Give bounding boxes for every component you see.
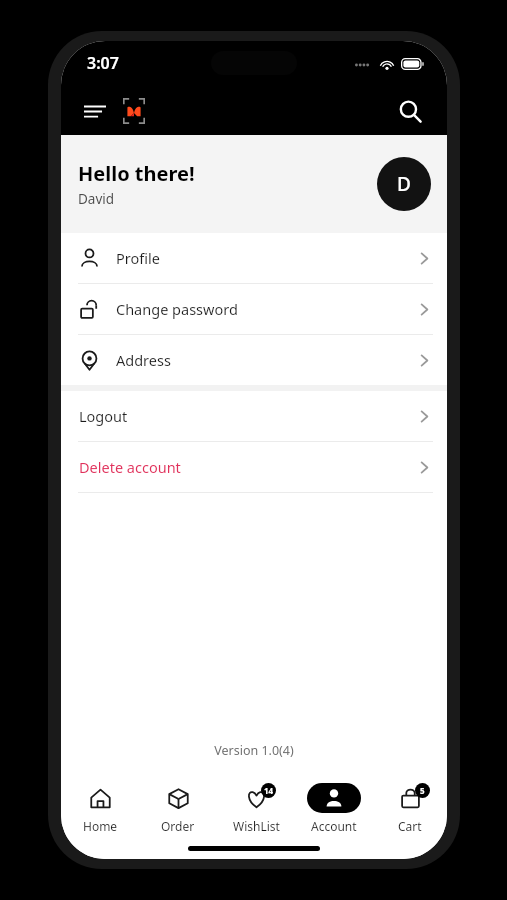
button[interactable]: 14 (217, 783, 295, 834)
staticText: 3:07 (87, 52, 119, 74)
button[interactable]: Delete account (61, 442, 447, 492)
button[interactable]: Account (295, 783, 373, 834)
staticText: Home (83, 818, 118, 834)
button[interactable]: Profile (61, 233, 447, 283)
button[interactable]: Menu (75, 91, 115, 131)
staticText: 5 (420, 785, 425, 796)
staticText: Change password (116, 299, 238, 319)
staticText: D (397, 171, 411, 197)
button[interactable]: D (377, 157, 431, 211)
staticText: Profile (116, 248, 160, 268)
staticText: Order (161, 818, 195, 834)
staticText: Logout (79, 406, 128, 426)
button[interactable]: Change password (61, 284, 447, 334)
staticText: Version 1.0(4) (61, 742, 447, 759)
staticText: David (78, 190, 115, 208)
button[interactable]: Home (61, 783, 139, 834)
staticText: Hello there! (78, 160, 195, 187)
button[interactable]: Address (61, 335, 447, 385)
staticText: Delete account (79, 457, 181, 477)
button[interactable]: 5 (373, 783, 447, 834)
button[interactable]: Order (139, 783, 217, 834)
staticText: Account (311, 818, 357, 834)
button[interactable]: Search (389, 90, 431, 132)
staticText: Address (116, 350, 171, 370)
staticText: 14 (264, 785, 274, 796)
button[interactable]: Logout (61, 391, 447, 441)
staticText: WishList (233, 818, 280, 834)
staticText: Cart (398, 818, 422, 834)
